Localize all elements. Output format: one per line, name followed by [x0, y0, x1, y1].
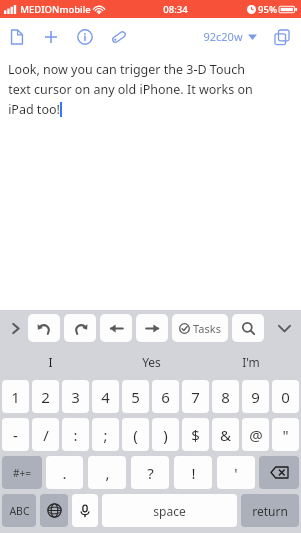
staticText: & [220, 425, 231, 445]
button[interactable]: @ [242, 418, 269, 451]
button[interactable]: Next [136, 314, 168, 342]
staticText: I'm [242, 354, 260, 370]
button[interactable]: ABC [2, 494, 36, 527]
staticText: 95% [258, 3, 277, 16]
button[interactable]: #+= [2, 456, 42, 489]
button[interactable]: Add [40, 26, 62, 48]
button[interactable]: Yes [101, 346, 201, 377]
button[interactable]: - [2, 418, 29, 451]
staticText: 6 [161, 387, 170, 407]
staticText: ( [133, 425, 138, 445]
button[interactable]: 9 [242, 380, 269, 413]
staticText: 4 [101, 387, 110, 407]
button[interactable]: I [0, 346, 101, 377]
button[interactable]: / [32, 418, 59, 451]
button[interactable]: ' [217, 456, 255, 489]
button[interactable]: Tag [108, 26, 130, 48]
staticText: $ [191, 425, 200, 445]
staticText: MEDIONmobile [20, 3, 91, 16]
staticText: @ [249, 425, 263, 445]
button[interactable]: Previous [100, 314, 132, 342]
staticText: ABC [9, 504, 30, 518]
button[interactable]: . [46, 456, 83, 489]
button[interactable]: ( [122, 418, 149, 451]
staticText: 92c20w [203, 29, 243, 44]
button[interactable]: 1 [2, 380, 29, 413]
button[interactable]: I'm [201, 346, 301, 377]
staticText: 0 [281, 387, 290, 407]
button[interactable]: Expand [4, 314, 26, 342]
button[interactable]: 4 [92, 380, 119, 413]
staticText: 5 [131, 387, 140, 407]
staticText: #+= [13, 466, 31, 480]
button[interactable]: space [102, 494, 237, 527]
button[interactable]: ! [174, 456, 212, 489]
staticText: Yes [142, 354, 161, 370]
staticText: 08:34 [163, 3, 188, 16]
staticText: , [105, 463, 110, 483]
button[interactable]: 3 [62, 380, 89, 413]
staticText: 8 [221, 387, 230, 407]
staticText: 1 [11, 387, 20, 407]
staticText: space [153, 503, 186, 519]
staticText: return [252, 503, 288, 519]
staticText: 2 [41, 387, 50, 407]
staticText: 3 [71, 387, 80, 407]
staticText: text cursor on any old iPhone. It works … [8, 81, 253, 98]
button[interactable]: 6 [152, 380, 179, 413]
staticText: : [73, 425, 78, 445]
staticText: 7 [191, 387, 200, 407]
button[interactable]: ? [131, 456, 169, 489]
staticText: / [43, 425, 49, 445]
button[interactable]: 2 [32, 380, 59, 413]
button[interactable]: Undo [28, 314, 60, 342]
staticText: 9 [251, 387, 260, 407]
button[interactable]: ; [92, 418, 119, 451]
button[interactable]: ) [152, 418, 179, 451]
button[interactable]: 92c20w [201, 25, 259, 48]
button[interactable]: 5 [122, 380, 149, 413]
button[interactable]: 7 [182, 380, 209, 413]
button[interactable]: return [241, 494, 299, 527]
button[interactable]: " [272, 418, 299, 451]
staticText: - [13, 425, 18, 445]
button[interactable]: Backspace [259, 456, 299, 489]
button[interactable]: 8 [212, 380, 239, 413]
staticText: ) [163, 425, 168, 445]
button[interactable]: Hide keyboard [271, 314, 297, 342]
button[interactable]: , [88, 456, 126, 489]
staticText: . [62, 463, 67, 483]
button[interactable]: & [212, 418, 239, 451]
button[interactable]: : [62, 418, 89, 451]
staticText: ' [234, 463, 238, 483]
staticText: " [282, 425, 289, 445]
staticText: Tasks [193, 321, 221, 336]
staticText: Look, now you can trigger the 3-D Touch [8, 61, 245, 78]
button[interactable]: Duplicate [271, 26, 293, 48]
staticText: I [48, 354, 53, 370]
button[interactable]: Search [232, 314, 264, 342]
staticText: ; [103, 425, 108, 445]
button[interactable]: Dictate [72, 494, 98, 527]
staticText: iPad too! [8, 101, 60, 118]
button[interactable]: 0 [272, 380, 299, 413]
staticText: ? [147, 463, 154, 483]
button[interactable]: New document [6, 26, 28, 48]
button[interactable]: Redo [64, 314, 96, 342]
button[interactable]: $ [182, 418, 209, 451]
button[interactable]: Change language [40, 494, 68, 527]
button[interactable]: Info [74, 26, 96, 48]
staticText: ! [191, 463, 196, 483]
button[interactable]: Tasks [172, 314, 228, 342]
